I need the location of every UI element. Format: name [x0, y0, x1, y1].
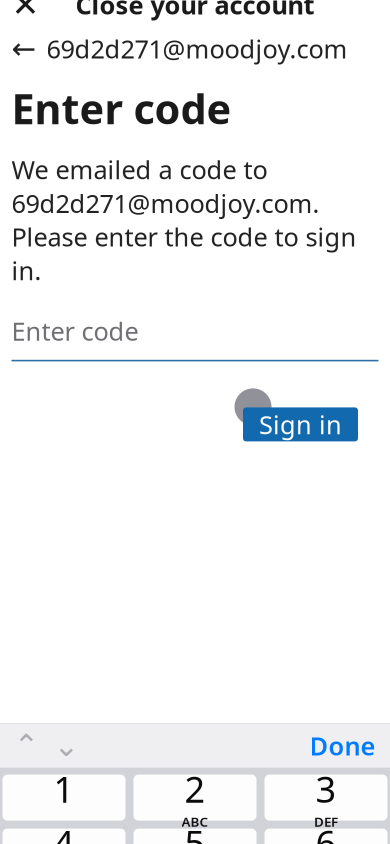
staticText: Enter code — [11, 314, 138, 348]
button[interactable]: Close — [2, 0, 48, 28]
button[interactable]: 1 — [2, 775, 125, 821]
button[interactable]: 6 — [264, 829, 387, 844]
staticText: 6 — [315, 819, 336, 844]
staticText: 4 — [53, 819, 74, 844]
staticText: ← — [11, 32, 36, 65]
button[interactable]: 4 — [2, 829, 125, 844]
staticText: ⌃ — [13, 728, 39, 763]
button[interactable]: Sign in — [243, 407, 358, 441]
button[interactable]: 2 — [133, 775, 256, 821]
staticText: 2 — [184, 765, 205, 813]
staticText: DEF — [314, 813, 338, 830]
button[interactable]: Done — [301, 724, 383, 768]
button[interactable]: Previous field — [6, 724, 46, 768]
button[interactable]: 5 — [133, 829, 256, 844]
staticText: Enter code — [11, 81, 231, 136]
staticText: ⌄ — [53, 728, 79, 763]
staticText: ABC — [181, 813, 208, 830]
button[interactable]: 3 — [264, 775, 387, 821]
staticText: We emailed a code to 69d2d271@moodjoy.co… — [11, 153, 356, 287]
button[interactable]: Next field — [46, 724, 86, 768]
staticText: Done — [309, 729, 375, 762]
button[interactable]: Back — [11, 34, 347, 64]
staticText: Sign in — [259, 408, 342, 441]
staticText: ✕ — [11, 0, 39, 24]
staticText: 1 — [53, 765, 74, 813]
staticText: 69d2d271@moodjoy.com — [46, 32, 347, 65]
staticText: Close your account — [75, 0, 314, 21]
staticText: 5 — [184, 819, 205, 844]
staticText: 3 — [315, 765, 336, 813]
